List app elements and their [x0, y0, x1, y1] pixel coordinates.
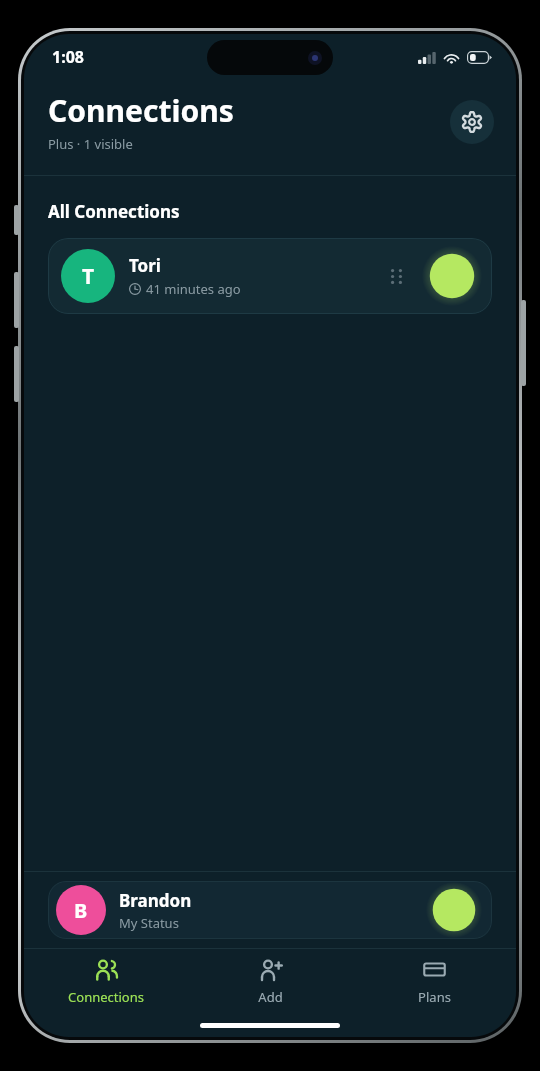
- staticText: Connections: [68, 988, 144, 1006]
- button[interactable]: Reorder: [384, 264, 408, 288]
- button[interactable]: Connections: [24, 949, 188, 1013]
- staticText: T: [82, 262, 95, 291]
- staticText: B: [74, 897, 88, 924]
- staticText: Plans: [418, 988, 451, 1006]
- staticText: Add: [258, 988, 283, 1006]
- button[interactable]: Plans: [352, 949, 516, 1013]
- staticText: My Status: [119, 914, 179, 932]
- staticText: 1:08: [52, 46, 84, 68]
- staticText: Brandon: [119, 889, 192, 912]
- staticText: 41 minutes ago: [146, 280, 241, 298]
- button[interactable]: Settings: [450, 100, 494, 144]
- button[interactable]: B: [48, 881, 492, 939]
- staticText: All Connections: [48, 200, 180, 223]
- staticText: Plus · 1 visible: [48, 135, 133, 153]
- button[interactable]: T: [48, 238, 492, 314]
- staticText: Tori: [129, 254, 161, 277]
- staticText: Connections: [48, 90, 234, 131]
- button[interactable]: Add: [188, 949, 352, 1013]
